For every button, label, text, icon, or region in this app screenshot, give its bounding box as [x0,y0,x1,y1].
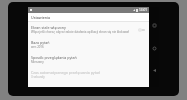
staticText: Czas automatycznego przełączania pytań [31,70,101,75]
button[interactable]: Sposób przeglądania pytań [28,52,149,67]
staticText: Mieszany [31,60,44,64]
button[interactable]: Czas automatycznego przełączania pytań [28,67,149,82]
staticText: Ekran stale włączony [31,25,66,30]
button[interactable]: Recent apps [150,21,158,29]
button[interactable]: Ustawienia [28,13,149,22]
staticText: Włącz jeśli chcesz, aby w trakcie działa… [31,30,129,34]
button[interactable]: Home [150,44,158,52]
staticText: 14:01 [139,8,148,12]
staticText: wer. 2016 [31,45,44,49]
button[interactable]: Ekran stale włączony [28,22,149,37]
staticText: Sposób przeglądania pytań [31,55,77,60]
button[interactable]: Baza pytań [28,37,149,52]
staticText: Baza pytań [31,40,50,45]
staticText: 3 sekundy [31,75,45,79]
button[interactable]: Toggle screen always on [136,26,148,33]
staticText: Ustawienia [31,15,51,20]
button[interactable]: Back [150,66,158,74]
